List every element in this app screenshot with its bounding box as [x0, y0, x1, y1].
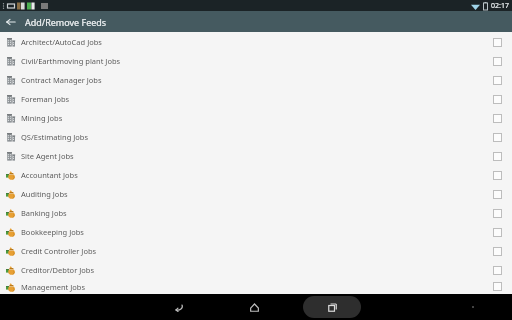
button[interactable]: Back — [0, 11, 21, 32]
staticText: Site Agent Jobs — [21, 151, 488, 161]
button[interactable]: Toggle Banking Jobs — [488, 204, 506, 222]
staticText: Architect/AutoCad Jobs — [21, 37, 488, 47]
staticText: 02:17 — [491, 1, 509, 11]
button[interactable]: Banking Jobs — [0, 203, 512, 222]
staticText: Banking Jobs — [21, 208, 488, 218]
staticText: Mining Jobs — [21, 113, 488, 123]
staticText: Auditing Jobs — [21, 189, 488, 199]
button[interactable]: Toggle Auditing Jobs — [488, 185, 506, 203]
button[interactable]: Foreman Jobs — [0, 89, 512, 108]
button[interactable]: Toggle Bookkeeping Jobs — [488, 223, 506, 241]
button[interactable]: Back — [151, 294, 205, 320]
button[interactable]: Recent apps — [303, 296, 361, 318]
button[interactable]: Toggle Contract Manager Jobs — [488, 71, 506, 89]
button[interactable]: Toggle Architect/AutoCad Jobs — [488, 33, 506, 51]
button[interactable]: Civil/Earthmoving plant Jobs — [0, 51, 512, 70]
button[interactable]: Bookkeeping Jobs — [0, 222, 512, 241]
button[interactable]: Architect/AutoCad Jobs — [0, 32, 512, 51]
button[interactable]: Toggle Foreman Jobs — [488, 90, 506, 108]
button[interactable]: Contract Manager Jobs — [0, 70, 512, 89]
staticText: Add/Remove Feeds — [25, 16, 107, 28]
button[interactable]: Toggle QS/Estimating Jobs — [488, 128, 506, 146]
staticText: Creditor/Debtor Jobs — [21, 265, 488, 275]
button[interactable]: QS/Estimating Jobs — [0, 127, 512, 146]
button[interactable]: Toggle Mining Jobs — [488, 109, 506, 127]
staticText: Management Jobs — [21, 282, 488, 292]
button[interactable]: Management Jobs — [0, 279, 512, 294]
button[interactable]: Credit Controller Jobs — [0, 241, 512, 260]
staticText: Bookkeeping Jobs — [21, 227, 488, 237]
button[interactable]: Toggle Management Jobs — [488, 279, 506, 294]
button[interactable]: Site Agent Jobs — [0, 146, 512, 165]
button[interactable]: Auditing Jobs — [0, 184, 512, 203]
staticText: Civil/Earthmoving plant Jobs — [21, 56, 488, 66]
staticText: Accountant Jobs — [21, 170, 488, 180]
staticText: Contract Manager Jobs — [21, 75, 488, 85]
staticText: QS/Estimating Jobs — [21, 132, 488, 142]
button[interactable]: Home — [227, 294, 281, 320]
button[interactable]: Creditor/Debtor Jobs — [0, 260, 512, 279]
button[interactable]: Toggle Creditor/Debtor Jobs — [488, 261, 506, 279]
button[interactable]: Accountant Jobs — [0, 165, 512, 184]
button[interactable]: Toggle Accountant Jobs — [488, 166, 506, 184]
button[interactable]: Toggle Credit Controller Jobs — [488, 242, 506, 260]
button[interactable]: Toggle Civil/Earthmoving plant Jobs — [488, 52, 506, 70]
staticText: Credit Controller Jobs — [21, 246, 488, 256]
staticText: Foreman Jobs — [21, 94, 488, 104]
button[interactable]: Mining Jobs — [0, 108, 512, 127]
button[interactable]: Toggle Site Agent Jobs — [488, 147, 506, 165]
